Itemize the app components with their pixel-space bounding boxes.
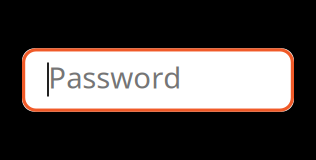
staticText: Password [48, 58, 181, 97]
button[interactable]: Password [22, 48, 294, 112]
